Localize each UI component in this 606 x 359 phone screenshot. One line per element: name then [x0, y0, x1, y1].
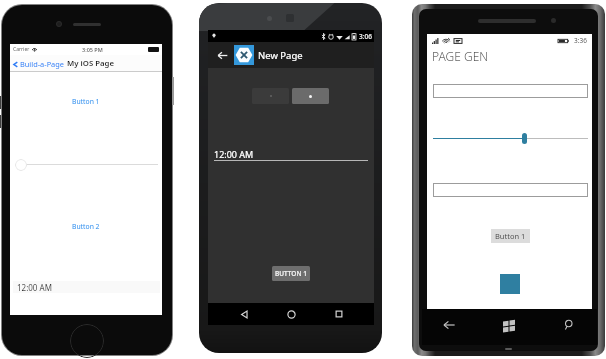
button[interactable] [433, 84, 588, 98]
button[interactable]: Button 2 [72, 222, 100, 231]
staticText: Carrier [13, 46, 30, 53]
button[interactable]: 12:00 AM [214, 148, 368, 160]
button[interactable] [433, 183, 588, 197]
button[interactable]: Navigate back [213, 46, 231, 64]
button[interactable]: Search [556, 312, 582, 338]
staticText: New Page [258, 49, 303, 62]
button[interactable]: Start [496, 312, 522, 338]
staticText: Build-a-Page [20, 59, 64, 69]
button[interactable]: Back [436, 312, 462, 338]
staticText: 12:00 AM [17, 282, 52, 293]
staticText: PAGE GEN [432, 48, 489, 64]
staticText: 12:00 AM [214, 148, 254, 160]
staticText: 3:05 PM [82, 46, 103, 53]
button[interactable]: BUTTON 1 [272, 266, 310, 281]
button[interactable]: Home [279, 303, 303, 325]
button[interactable] [292, 88, 329, 104]
button[interactable]: Back [232, 303, 256, 325]
button[interactable]: Recent apps [327, 303, 351, 325]
button[interactable]: 12:00 AM [13, 281, 160, 293]
button[interactable]: Build-a-Page [12, 59, 64, 69]
staticText: 3:06 [359, 32, 372, 41]
staticText: 3:36 [574, 36, 587, 45]
staticText: BUTTON 1 [275, 269, 307, 278]
button[interactable]: Button 1 [491, 229, 530, 243]
button[interactable] [433, 133, 588, 144]
button[interactable] [15, 159, 27, 171]
staticText: My iOS Page [67, 58, 114, 69]
button[interactable]: Button 1 [72, 97, 100, 106]
staticText: Button 1 [495, 231, 526, 241]
